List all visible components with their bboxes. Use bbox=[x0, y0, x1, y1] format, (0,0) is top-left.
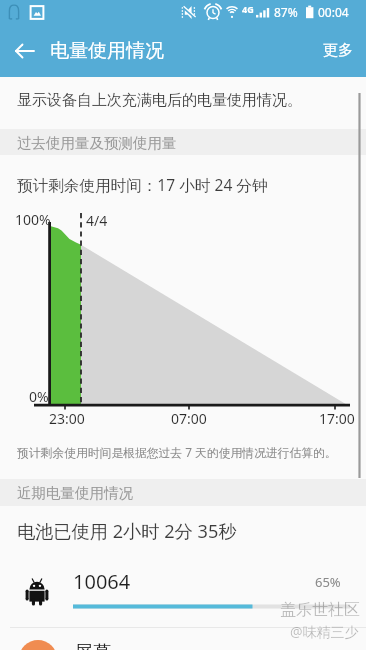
staticText: 更多 bbox=[323, 41, 353, 60]
staticText: 23:00 bbox=[49, 409, 85, 428]
staticText: 17:00 bbox=[319, 409, 355, 428]
staticText: 65% bbox=[315, 573, 341, 591]
staticText: 过去使用量及预测使用量 bbox=[17, 134, 177, 152]
staticText: 显示设备自上次充满电后的电量使用情况。 bbox=[17, 91, 302, 110]
staticText: 07:00 bbox=[171, 409, 207, 428]
staticText: 0% bbox=[29, 387, 49, 406]
button[interactable]: 过去使用量及预测使用量 bbox=[0, 129, 366, 155]
staticText: 00:04 bbox=[318, 4, 349, 20]
button[interactable]: Back bbox=[0, 24, 50, 77]
staticText: 10064 bbox=[73, 568, 131, 595]
button[interactable]: 屏幕 bbox=[0, 628, 366, 650]
button[interactable]: 更多 bbox=[307, 24, 366, 77]
staticText: 近期电量使用情况 bbox=[17, 484, 133, 502]
staticText: @味精三少 bbox=[290, 622, 359, 641]
staticText: 预计剩余使用时间：17 小时 24 分钟 bbox=[17, 174, 268, 195]
button[interactable]: 近期电量使用情况 bbox=[0, 479, 366, 506]
staticText: 电量使用情况 bbox=[50, 39, 164, 63]
staticText: 预计剩余使用时间是根据您过去 7 天的使用情况进行估算的。 bbox=[17, 444, 337, 460]
staticText: 4G bbox=[242, 3, 254, 15]
staticText: 87% bbox=[274, 4, 298, 20]
staticText: 100% bbox=[15, 210, 51, 229]
staticText: 屏幕 bbox=[74, 641, 112, 650]
button[interactable]: 10064 bbox=[0, 555, 366, 627]
staticText: 4/4 bbox=[86, 211, 108, 230]
staticText: 电池已使用 2小时 2分 35秒 bbox=[17, 519, 237, 544]
staticText: 盖乐世社区 bbox=[280, 600, 360, 620]
